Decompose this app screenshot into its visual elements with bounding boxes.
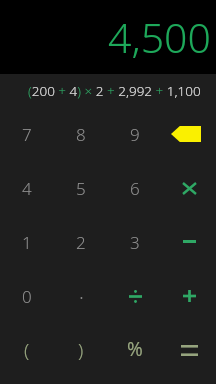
- staticText: (200 + 4) × 2 + 2,992 + 1,100: [28, 82, 201, 100]
- button[interactable]: 5: [54, 161, 108, 215]
- button[interactable]: 7: [0, 107, 54, 161]
- staticText: ): [78, 337, 84, 363]
- button[interactable]: ): [54, 323, 108, 377]
- button[interactable]: %: [108, 323, 162, 377]
- staticText: 7: [22, 123, 32, 146]
- staticText: 4,500: [108, 9, 211, 65]
- button[interactable]: 6: [108, 161, 162, 215]
- staticText: ·: [79, 284, 84, 311]
- button[interactable]: 1: [0, 215, 54, 269]
- button[interactable]: 9: [108, 107, 162, 161]
- staticText: 8: [76, 123, 86, 146]
- staticText: 6: [130, 177, 140, 200]
- staticText: 2: [76, 231, 86, 254]
- button[interactable]: 4: [0, 161, 54, 215]
- staticText: 5: [76, 177, 86, 200]
- button[interactable]: 0: [0, 269, 54, 323]
- button[interactable]: (: [0, 323, 54, 377]
- staticText: %: [127, 336, 143, 362]
- staticText: 9: [130, 123, 140, 146]
- button[interactable]: Backspace: [162, 107, 216, 161]
- staticText: (: [24, 337, 30, 363]
- staticText: 4: [22, 177, 32, 200]
- button[interactable]: 2: [54, 215, 108, 269]
- button[interactable]: Multiply: [162, 161, 216, 215]
- button[interactable]: Equals: [162, 323, 216, 377]
- staticText: 1: [22, 231, 32, 254]
- staticText: 0: [22, 285, 32, 308]
- staticText: 3: [130, 231, 140, 254]
- button[interactable]: Divide: [108, 269, 162, 323]
- button[interactable]: Minus: [162, 215, 216, 269]
- button[interactable]: 8: [54, 107, 108, 161]
- button[interactable]: Plus: [162, 269, 216, 323]
- button[interactable]: 3: [108, 215, 162, 269]
